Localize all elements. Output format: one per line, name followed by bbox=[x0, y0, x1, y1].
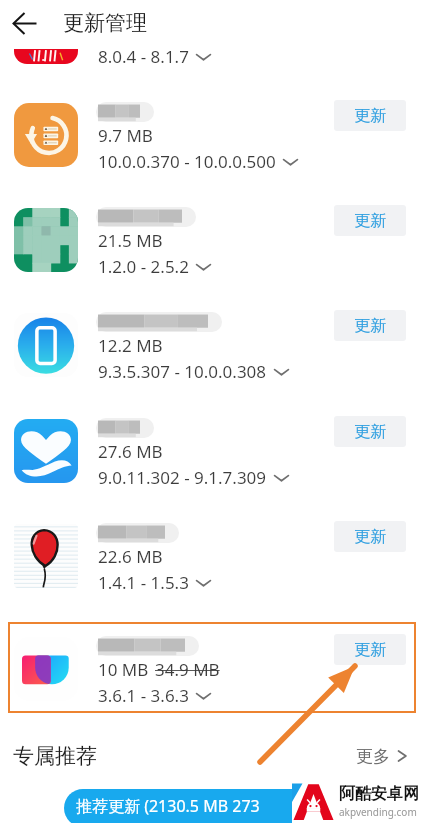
staticText: 专属推荐 bbox=[13, 743, 97, 769]
staticText: 12.2 MB bbox=[98, 334, 163, 357]
button[interactable]: 21.5 MB bbox=[0, 208, 427, 302]
button[interactable]: 22.6 MB bbox=[0, 524, 427, 618]
button[interactable]: 更新 bbox=[334, 634, 406, 665]
button[interactable]: 推荐更新 (2130.5 MB 273 bbox=[64, 789, 363, 823]
staticText: akpvending.com bbox=[339, 805, 417, 819]
button[interactable]: 专属推荐 bbox=[0, 731, 427, 781]
staticText: 10 MB bbox=[98, 658, 149, 681]
staticText: 更新 bbox=[354, 316, 386, 336]
staticText: 更新管理 bbox=[63, 10, 147, 36]
staticText: 更新 bbox=[354, 640, 386, 660]
staticText: 更新 bbox=[354, 211, 386, 231]
button[interactable]: 9.7 MB bbox=[0, 103, 427, 197]
staticText: 8.0.4 - 8.1.7 bbox=[98, 45, 189, 68]
button[interactable]: 更新 bbox=[334, 416, 406, 447]
button[interactable]: Back bbox=[0, 0, 48, 46]
staticText: 更多 bbox=[356, 746, 390, 767]
button[interactable]: 更新 bbox=[334, 521, 406, 552]
staticText: 更新 bbox=[354, 527, 386, 547]
staticText: 更新 bbox=[354, 106, 386, 126]
staticText: 21.5 MB bbox=[98, 229, 163, 252]
staticText: 10.0.0.370 - 10.0.0.500 bbox=[98, 150, 276, 173]
button[interactable]: 更新 bbox=[334, 205, 406, 236]
staticText: 更新 bbox=[354, 422, 386, 442]
staticText: 27.6 MB bbox=[98, 440, 163, 463]
button[interactable]: 10 MB bbox=[0, 637, 427, 731]
staticText: 1.2.0 - 2.5.2 bbox=[98, 255, 189, 278]
staticText: 3.6.1 - 3.6.3 bbox=[98, 684, 189, 707]
button[interactable]: 更新 bbox=[334, 100, 406, 131]
staticText: 9.0.11.302 - 9.1.7.309 bbox=[98, 466, 267, 489]
staticText: 9.3.5.307 - 10.0.0.308 bbox=[98, 360, 267, 383]
staticText: 1.4.1 - 1.5.3 bbox=[98, 571, 189, 594]
button[interactable]: 更新 bbox=[334, 310, 406, 341]
staticText: 22.6 MB bbox=[98, 545, 163, 568]
button[interactable]: 27.6 MB bbox=[0, 419, 427, 513]
staticText: 阿酷安卓网 bbox=[339, 784, 419, 804]
button[interactable]: 12.2 MB bbox=[0, 313, 427, 407]
staticText: 推荐更新 (2130.5 MB 273 bbox=[76, 795, 260, 817]
staticText: 9.7 MB bbox=[98, 124, 153, 147]
staticText: 34.9 MB bbox=[155, 658, 220, 681]
